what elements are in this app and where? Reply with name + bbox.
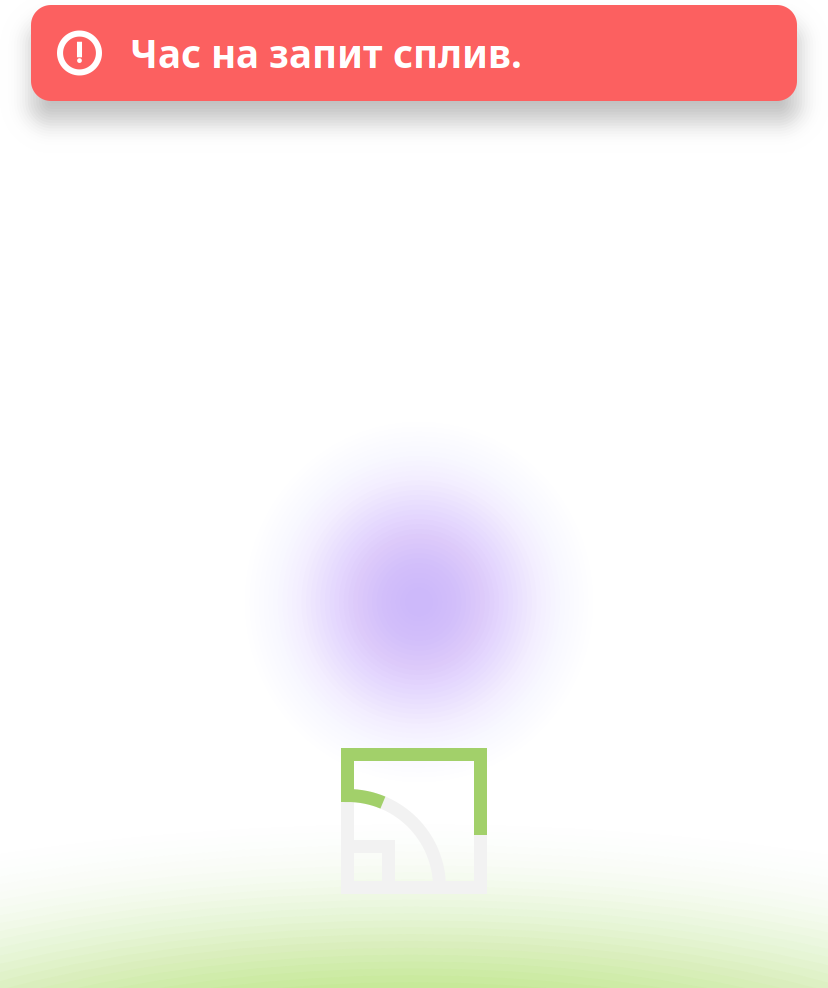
button[interactable]: Час на запит сплив. bbox=[31, 5, 797, 101]
staticText: Час на запит сплив. bbox=[130, 27, 522, 79]
